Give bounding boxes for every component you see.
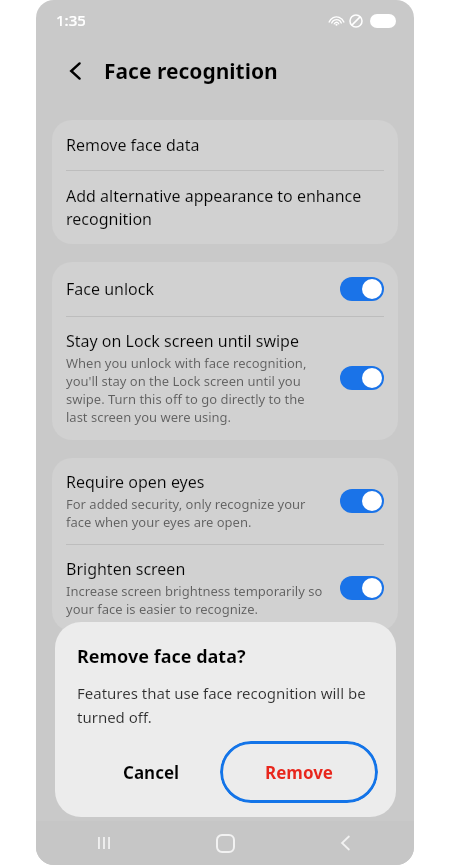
button[interactable]: Toggle on	[340, 576, 384, 600]
button[interactable]: Remove face data	[52, 120, 398, 170]
staticText: Add alternative appearance to enhance re…	[66, 185, 384, 230]
staticText: Remove	[265, 761, 334, 784]
button[interactable]: Require open eyes	[52, 458, 398, 544]
staticText: Stay on Lock screen until swipe	[66, 330, 299, 352]
button[interactable]: Cancel	[92, 747, 210, 797]
staticText: Cancel	[123, 761, 180, 784]
staticText: Remove face data?	[77, 644, 246, 669]
staticText: When you unlock with face recognition, y…	[66, 354, 328, 426]
staticText: Require open eyes	[66, 471, 205, 493]
staticText: Increase screen brightness temporarily s…	[66, 582, 328, 618]
button[interactable]: Toggle on	[340, 366, 384, 390]
staticText: Features that use face recognition will …	[77, 683, 378, 727]
staticText: Face unlock	[66, 278, 340, 300]
staticText: Remove face data	[66, 134, 200, 156]
button[interactable]: Stay on Lock screen until swipe	[52, 317, 398, 440]
staticText: Brighten screen	[66, 558, 186, 580]
button[interactable]: Brighten screen	[52, 545, 398, 631]
button[interactable]: Back	[324, 821, 368, 865]
button[interactable]: Recent apps	[82, 821, 126, 865]
staticText: 1:35	[56, 10, 86, 30]
button[interactable]: Toggle on	[340, 277, 384, 301]
button[interactable]: Add alternative appearance to enhance re…	[52, 171, 398, 244]
staticText: For added security, only recognize your …	[66, 495, 328, 531]
button[interactable]: Toggle on	[340, 489, 384, 513]
button[interactable]: Remove	[220, 741, 378, 803]
button[interactable]: Face unlock	[52, 262, 398, 316]
staticText: Face recognition	[104, 57, 278, 86]
button[interactable]: Home	[203, 821, 247, 865]
button[interactable]: Back	[56, 51, 96, 91]
